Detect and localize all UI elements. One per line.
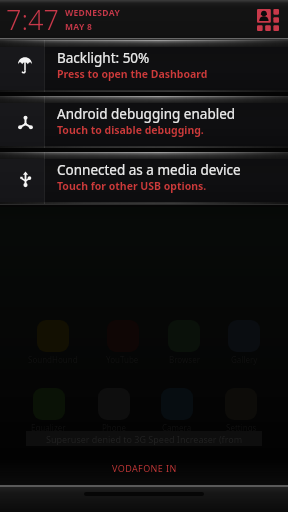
staticText: WEDNESDAY [65, 7, 121, 19]
staticText: VODAFONE IN [112, 462, 177, 474]
button[interactable]: SoundHound [37, 320, 69, 352]
staticText: Press to open the Dashboard [57, 67, 208, 81]
staticText: Settings [226, 422, 257, 433]
button[interactable]: Quick settings [257, 9, 279, 31]
staticText: MAY 8 [65, 21, 93, 33]
staticText: Superuser denied to 3G Speed Increaser (… [46, 433, 243, 445]
staticText: Connected as a media device [57, 161, 241, 179]
button[interactable]: Camera [161, 388, 193, 420]
staticText: Touch for other USB options. [57, 179, 207, 193]
staticText: Equalizer [31, 422, 66, 433]
staticText: Phone [102, 422, 127, 433]
staticText: Touch to disable debugging. [57, 123, 204, 137]
staticText: Backlight: 50% [57, 49, 150, 67]
button[interactable]: Connected as a media device [0, 152, 288, 204]
button[interactable]: Android debugging enabled [0, 96, 288, 148]
staticText: Android debugging enabled [57, 105, 236, 123]
button[interactable]: Backlight: 50% [0, 40, 288, 92]
staticText: Camera [162, 422, 192, 433]
staticText: 7:47 [6, 1, 59, 38]
button[interactable]: Equalizer [33, 388, 65, 420]
